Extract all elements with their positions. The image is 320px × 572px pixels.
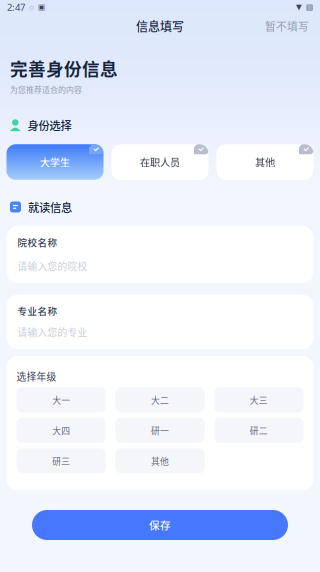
staticText: ◌ <box>29 2 34 12</box>
button[interactable]: 大二 <box>115 387 205 412</box>
staticText: 院校名称 <box>17 235 57 249</box>
staticText: 完善身份信息 <box>10 55 118 80</box>
button[interactable]: 研三 <box>16 448 106 473</box>
staticText: 为您推荐适合的内容 <box>10 83 82 95</box>
staticText: 专业名称 <box>17 304 57 317</box>
staticText: ▣ <box>38 3 45 11</box>
staticText: 选择年级 <box>16 369 56 383</box>
button[interactable]: 大三 <box>214 387 303 412</box>
staticText: 研一 <box>151 424 169 437</box>
button[interactable]: 暂不填写 <box>256 13 320 39</box>
staticText: 大二 <box>151 393 169 406</box>
staticText: 2:47 <box>7 0 25 13</box>
staticText: 大四 <box>52 424 70 437</box>
staticText: 身份选择 <box>28 117 72 133</box>
staticText: ▼ <box>296 3 302 11</box>
staticText: 其他 <box>151 454 169 467</box>
staticText: 信息填写 <box>136 17 184 35</box>
button[interactable]: 大学生 <box>6 144 103 180</box>
staticText: 保存 <box>149 517 171 533</box>
staticText: 暂不填写 <box>265 18 309 34</box>
staticText: 在职人员 <box>140 155 180 169</box>
button[interactable]: 其他 <box>115 448 205 473</box>
staticText: 大一 <box>52 393 70 406</box>
button[interactable]: 研二 <box>214 418 303 443</box>
staticText: 研二 <box>250 424 268 437</box>
staticText: ▤ <box>306 3 313 11</box>
staticText: 大三 <box>250 393 268 406</box>
button[interactable]: 大一 <box>16 387 106 412</box>
staticText: 研三 <box>52 454 70 467</box>
staticText: 大学生 <box>40 155 70 169</box>
button[interactable]: 其他 <box>216 144 313 180</box>
staticText: 其他 <box>255 155 275 169</box>
button[interactable]: 研一 <box>115 418 205 443</box>
staticText: 请输入您的院校 <box>17 259 87 273</box>
staticText: 就读信息 <box>28 199 72 215</box>
button[interactable]: 在职人员 <box>111 144 208 180</box>
button[interactable]: 大四 <box>16 418 106 443</box>
staticText: 请输入您的专业 <box>17 325 87 339</box>
button[interactable]: 保存 <box>32 510 288 540</box>
